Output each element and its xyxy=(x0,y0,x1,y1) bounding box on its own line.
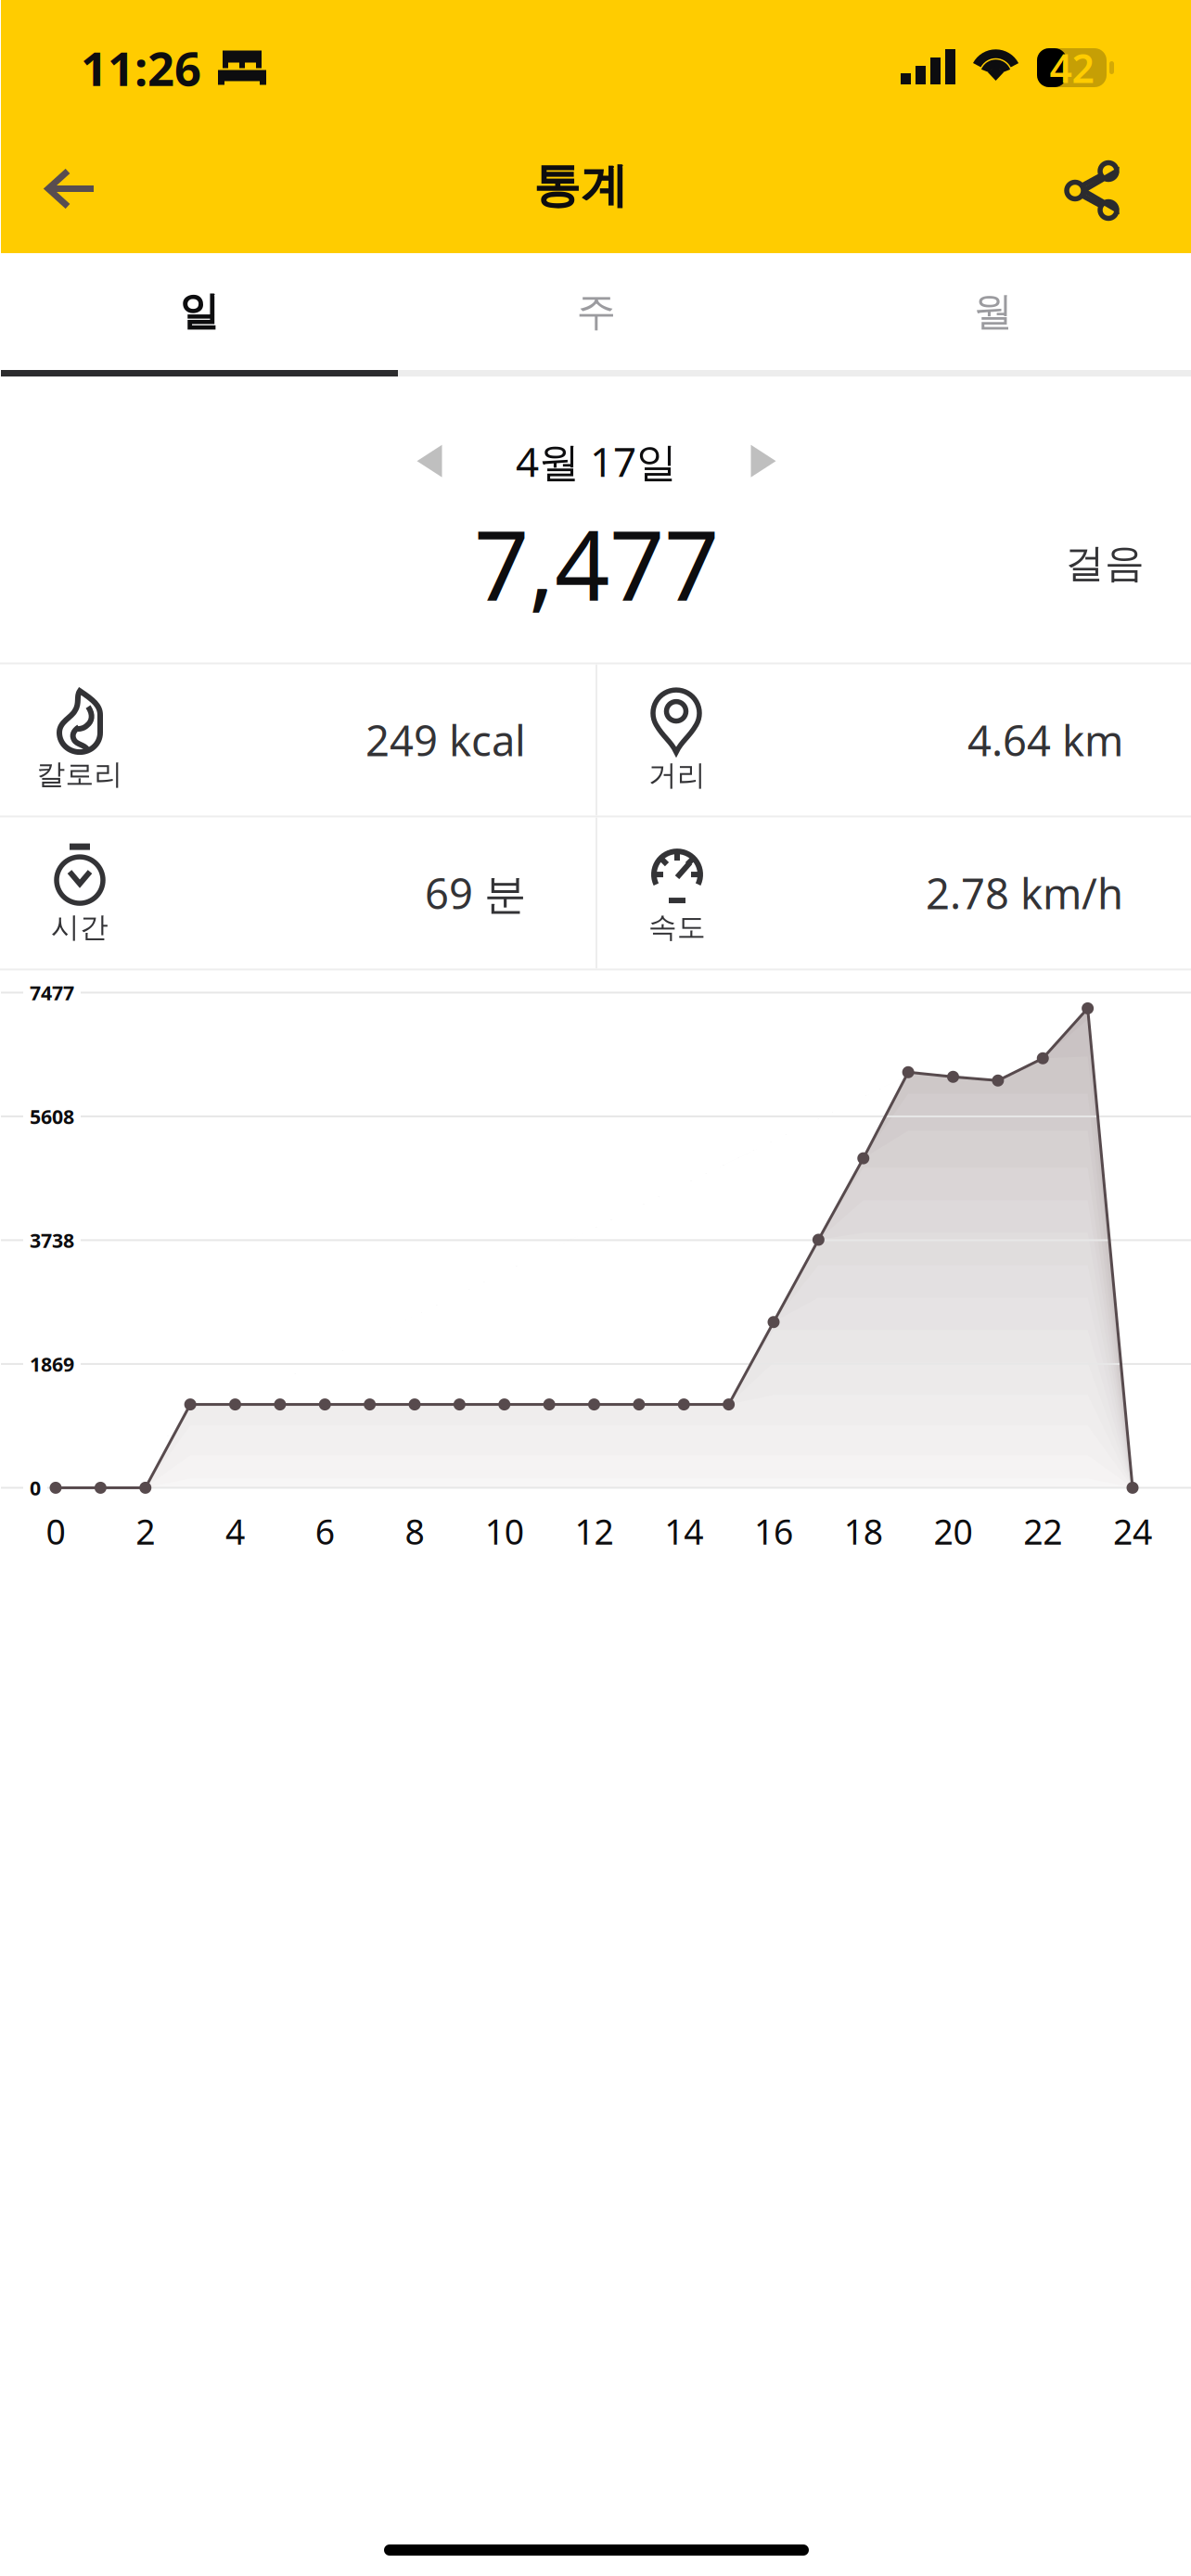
staticText: 걸음 xyxy=(1065,539,1145,588)
staticText: 7,477 xyxy=(474,499,719,627)
staticText: 4 xyxy=(225,1508,245,1554)
button[interactable]: Previous day xyxy=(417,445,442,477)
staticText: 14 xyxy=(664,1508,703,1554)
staticText: 12 xyxy=(575,1508,614,1554)
button[interactable]: Share xyxy=(1058,150,1123,222)
staticText: 4.64 km xyxy=(967,712,1123,768)
staticText: 시간 xyxy=(51,910,109,945)
staticText: 24 xyxy=(1113,1508,1152,1554)
staticText: 22 xyxy=(1023,1508,1062,1554)
staticText: 월 xyxy=(973,287,1013,336)
staticText: 0 xyxy=(46,1508,65,1554)
staticText: 1869 xyxy=(30,1351,74,1377)
staticText: 주 xyxy=(576,287,616,336)
staticText: 속도 xyxy=(648,910,706,945)
staticText: 0 xyxy=(30,1475,41,1501)
staticText: 10 xyxy=(485,1508,524,1554)
button[interactable]: 주 xyxy=(398,253,795,370)
staticText: 42 xyxy=(1050,41,1094,94)
staticText: 칼로리 xyxy=(37,757,123,792)
staticText: 2.78 km/h xyxy=(926,865,1123,921)
staticText: 일 xyxy=(179,287,219,336)
button[interactable]: Next day xyxy=(751,445,776,477)
staticText: 2 xyxy=(136,1508,155,1554)
staticText: 16 xyxy=(754,1508,793,1554)
button[interactable]: Back xyxy=(38,159,103,213)
staticText: 20 xyxy=(934,1508,973,1554)
staticText: 249 kcal xyxy=(365,712,526,768)
staticText: 8 xyxy=(405,1508,424,1554)
staticText: 18 xyxy=(844,1508,883,1554)
staticText: 4월 17일 xyxy=(516,434,677,488)
staticText: 통계 xyxy=(533,157,628,215)
staticText: 69 분 xyxy=(425,865,526,921)
staticText: 5608 xyxy=(30,1103,74,1130)
button[interactable]: 월 xyxy=(795,253,1191,370)
staticText: 6 xyxy=(315,1508,335,1554)
staticText: 7477 xyxy=(30,980,74,1006)
button[interactable]: 일 xyxy=(1,253,398,370)
staticText: 3738 xyxy=(30,1227,74,1253)
staticText: 11:26 xyxy=(81,37,201,99)
staticText: 거리 xyxy=(648,758,706,793)
